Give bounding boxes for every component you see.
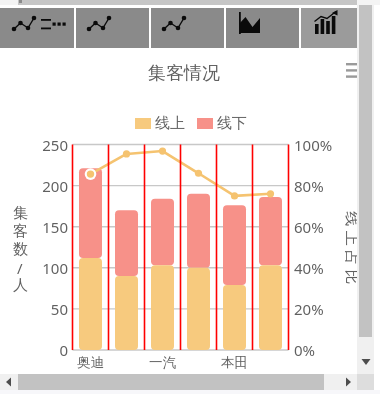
button[interactable]: Scroll right [338, 374, 357, 390]
button[interactable]: 线上 [135, 114, 247, 132]
button[interactable]: Scroll down [357, 350, 374, 372]
staticText: 线上占比 [342, 209, 361, 287]
staticText: 奥迪 [77, 354, 104, 371]
staticText: 集 [13, 204, 28, 222]
staticText: 人 [13, 276, 28, 294]
staticText: 40% [294, 258, 324, 278]
button[interactable]: Scroll left [0, 374, 18, 390]
staticText: 一汽 [149, 354, 176, 371]
staticText: 100 [42, 258, 68, 278]
button[interactable]: 集客情况 [132, 60, 236, 86]
staticText: 200 [42, 176, 68, 196]
staticText: 100% [294, 135, 333, 155]
button[interactable]: Menu [342, 58, 362, 78]
staticText: 60% [294, 217, 324, 237]
staticText: 150 [42, 217, 68, 237]
button[interactable]: Line chart with legend [0, 8, 74, 48]
staticText: 0% [294, 340, 316, 360]
staticText: 50 [50, 299, 68, 319]
staticText: 0 [59, 340, 68, 360]
button[interactable]: Bar chart [301, 8, 358, 48]
button[interactable]: Line chart [76, 8, 149, 48]
button[interactable]: Area chart [226, 8, 299, 48]
staticText: 本田 [221, 354, 248, 371]
button[interactable]: Line chart 2 [151, 8, 224, 48]
staticText: 80% [294, 176, 324, 196]
staticText: 线下 [217, 114, 247, 132]
staticText: 集客情况 [148, 62, 220, 85]
staticText: 数 [13, 240, 28, 258]
staticText: / [17, 258, 23, 276]
staticText: 250 [42, 135, 68, 155]
staticText: 线上 [155, 114, 185, 132]
staticText: 20% [294, 299, 324, 319]
staticText: 客 [13, 222, 28, 240]
